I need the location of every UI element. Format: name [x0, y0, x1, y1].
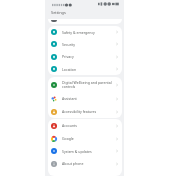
staticText: System & updates [62, 149, 92, 154]
staticText: Assistant [62, 96, 77, 101]
button[interactable]: Privacy [48, 50, 122, 63]
staticText: Safety & emergency [62, 30, 95, 35]
staticText: Google [62, 136, 74, 141]
button[interactable]: About phone [48, 157, 122, 170]
button[interactable]: Google [48, 132, 122, 145]
button[interactable]: Safety & emergency [48, 26, 122, 38]
button[interactable]: Security [48, 38, 122, 50]
button[interactable]: Digital Wellbeing and parental controls [48, 77, 122, 92]
staticText: Location [62, 67, 77, 72]
button[interactable]: Accessibility features [48, 105, 122, 118]
staticText: Security [62, 42, 76, 47]
staticText: About phone [62, 161, 84, 166]
staticText: Privacy [62, 54, 74, 59]
button[interactable]: Accounts [48, 119, 122, 132]
staticText: Accounts [62, 123, 77, 128]
staticText: Accessibility features [62, 109, 97, 114]
button[interactable]: System & updates [48, 145, 122, 157]
button[interactable]: Location [48, 63, 122, 75]
button[interactable]: Assistant [48, 92, 122, 105]
staticText: Digital Wellbeing and parental controls [62, 80, 115, 89]
staticText: Settings [51, 10, 66, 15]
